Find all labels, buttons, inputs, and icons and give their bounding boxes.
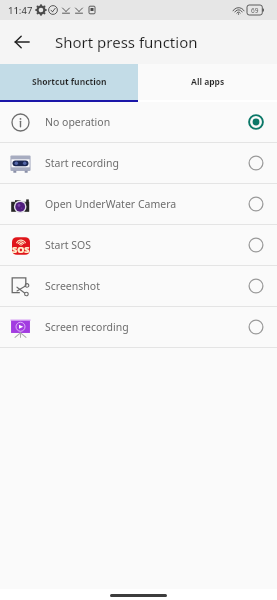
staticText: Shortcut function: [32, 76, 107, 88]
button[interactable]: No operation: [0, 102, 277, 142]
button[interactable]: Start recording: [0, 143, 277, 183]
staticText: Short press function: [55, 32, 198, 52]
button[interactable]: Screenshot: [0, 266, 277, 306]
button[interactable]: Shortcut function: [0, 64, 138, 100]
staticText: Start recording: [45, 156, 119, 170]
staticText: 69: [251, 6, 259, 15]
staticText: 11:47: [8, 4, 33, 17]
button[interactable]: Open UnderWater Camera: [0, 184, 277, 224]
staticText: Screen recording: [45, 320, 129, 334]
button[interactable]: SOS: [0, 225, 277, 265]
staticText: Start SOS: [45, 238, 92, 252]
staticText: Screenshot: [45, 279, 100, 293]
staticText: SOS: [12, 243, 30, 255]
button[interactable]: Screen recording: [0, 307, 277, 347]
button[interactable]: All apps: [138, 64, 277, 100]
staticText: Open UnderWater Camera: [45, 197, 177, 211]
staticText: No operation: [45, 115, 111, 129]
button[interactable]: Back: [8, 28, 36, 56]
staticText: All apps: [191, 76, 225, 88]
